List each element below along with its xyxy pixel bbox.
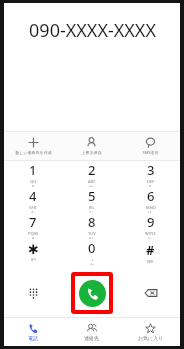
button[interactable]: SMS送信 (121, 132, 180, 160)
staticText: QQ (30, 179, 37, 184)
button[interactable]: Keypad (18, 278, 48, 308)
button[interactable]: 7 (4, 213, 62, 239)
staticText: 090-XXXX-XXXX (29, 18, 156, 43)
staticText: (W) (147, 259, 154, 264)
button[interactable]: 9 (121, 213, 180, 239)
button[interactable]: 2 (62, 161, 121, 187)
button[interactable]: 電話 (4, 318, 62, 346)
staticText: 0 (88, 239, 96, 257)
staticText: DEF (147, 179, 155, 184)
staticText: 2 (88, 161, 96, 179)
staticText: # (146, 241, 155, 259)
staticText: GHI (29, 205, 37, 210)
staticText: ✱ (28, 242, 39, 257)
staticText: な (89, 210, 94, 213)
staticText: TUV (88, 231, 96, 236)
staticText: か (89, 184, 94, 187)
staticText: あ (31, 184, 36, 187)
staticText: WXYZ (145, 231, 156, 236)
staticText: + (91, 257, 94, 262)
staticText: ま (31, 236, 36, 239)
button[interactable]: ✱ (4, 239, 62, 265)
staticText: 4 (29, 187, 37, 205)
button[interactable]: 5 (62, 187, 121, 213)
staticText: 電話 (28, 335, 38, 341)
button[interactable]: 3 (121, 161, 180, 187)
button[interactable]: Backspace (136, 278, 166, 308)
staticText: さ (148, 184, 153, 187)
staticText: 5 (88, 187, 96, 205)
staticText: SMS送信 (142, 150, 159, 155)
staticText: 7 (29, 213, 37, 231)
button[interactable]: 6 (121, 187, 180, 213)
button[interactable]: Call (75, 276, 109, 310)
button[interactable]: 8 (62, 213, 121, 239)
staticText: た (31, 210, 36, 213)
button[interactable]: 0 (62, 239, 121, 265)
staticText: ら (148, 236, 153, 239)
staticText: PQRS (28, 231, 39, 236)
button[interactable]: 1 (4, 161, 62, 187)
staticText: 新しい連絡先を作成 (15, 150, 52, 155)
button[interactable]: お気に入り (121, 318, 180, 346)
staticText: 9 (147, 213, 155, 231)
staticText: 1 (29, 161, 37, 179)
staticText: (P) (31, 257, 36, 262)
staticText: 8 (88, 213, 96, 231)
staticText: 6 (147, 187, 155, 205)
staticText: ABC (88, 179, 96, 184)
staticText: や (89, 236, 94, 239)
button[interactable]: 上書き保存 (62, 132, 121, 160)
staticText: 3 (147, 161, 155, 179)
button[interactable]: 連絡先 (62, 318, 121, 346)
staticText: わ (90, 262, 95, 265)
staticText: MNO (146, 205, 156, 210)
staticText: JKL (89, 205, 95, 210)
button[interactable]: 4 (4, 187, 62, 213)
button[interactable]: # (121, 239, 180, 265)
staticText: 連絡先 (84, 335, 99, 341)
button[interactable]: 新しい連絡先を作成 (4, 132, 62, 160)
staticText: 上書き保存 (81, 150, 102, 155)
staticText: は (148, 210, 153, 213)
staticText: お気に入り (138, 335, 164, 341)
